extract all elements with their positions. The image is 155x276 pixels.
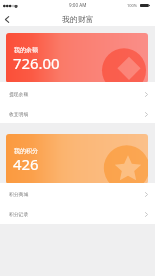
staticText: 9:00 AM [69, 2, 87, 8]
staticText: 收支明细 [9, 111, 29, 117]
button[interactable]: 积分商城 [0, 183, 155, 203]
button[interactable]: 我的积分 [6, 134, 148, 184]
staticText: 426 [13, 154, 39, 174]
button[interactable]: 提现余额 [0, 82, 155, 102]
staticText: 100% [127, 3, 138, 8]
staticText: 积分商城 [9, 191, 29, 197]
staticText: 我的积分 [14, 147, 38, 155]
button[interactable]: 收支明细 [0, 102, 155, 122]
staticText: 我的余额 [14, 46, 38, 54]
staticText: 提现余额 [9, 91, 29, 97]
button[interactable]: 积分记录 [0, 203, 155, 223]
staticText: 我的财富 [62, 14, 94, 24]
button[interactable]: Back [0, 12, 18, 26]
staticText: 积分记录 [9, 211, 29, 217]
staticText: 726.00 [13, 53, 60, 73]
button[interactable]: 我的余额 [6, 33, 148, 83]
